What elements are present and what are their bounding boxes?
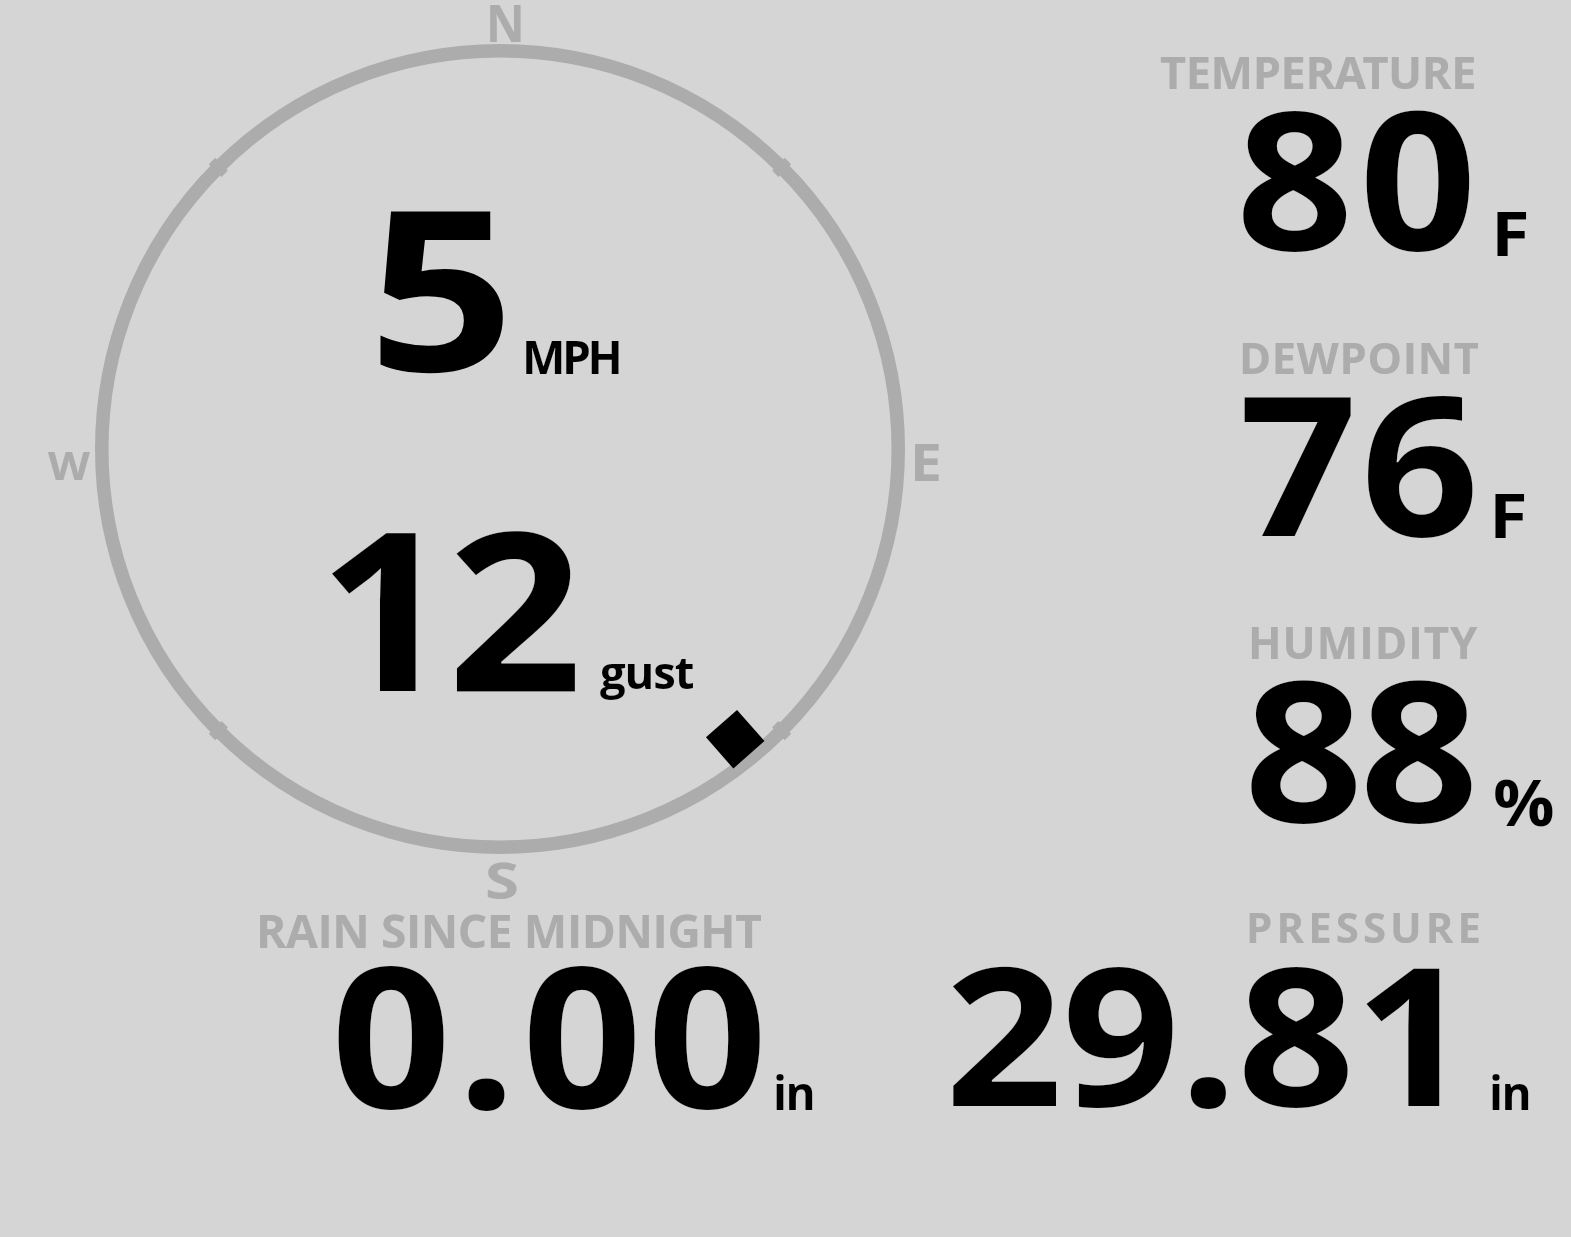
button[interactable]: Rain since midnight 0.00 inches xyxy=(230,895,850,1125)
staticText: 80 xyxy=(1236,45,1483,306)
staticText: gust xyxy=(600,640,694,702)
button[interactable]: Temperature 80 degrees Fahrenheit xyxy=(1100,40,1571,310)
staticText: F xyxy=(1489,474,1528,556)
staticText: S xyxy=(485,845,519,914)
button[interactable]: Humidity 88 percent xyxy=(1100,610,1571,880)
staticText: in xyxy=(1489,1061,1531,1124)
staticText: TEMPERATURE xyxy=(1160,41,1477,102)
staticText: E xyxy=(910,426,943,497)
staticText: DEWPOINT xyxy=(1239,328,1480,387)
button[interactable]: Wind speed and direction xyxy=(60,10,950,900)
staticText: 0.00 xyxy=(331,898,773,1165)
button[interactable]: Pressure 29.81 inches xyxy=(900,895,1560,1125)
staticText: MPH xyxy=(522,325,620,388)
button[interactable]: Dew point 76 degrees Fahrenheit xyxy=(1100,325,1571,595)
staticText: 5 xyxy=(368,132,515,437)
staticText: PRESSURE xyxy=(1246,898,1486,955)
staticText: in xyxy=(773,1061,815,1124)
staticText: W xyxy=(48,438,91,492)
staticText: 76 xyxy=(1239,329,1483,593)
staticText: 29.81 xyxy=(945,900,1471,1162)
staticText: RAIN SINCE MIDNIGHT xyxy=(256,899,762,962)
staticText: HUMIDITY xyxy=(1248,612,1479,672)
staticText: 12 xyxy=(318,455,577,756)
staticText: N xyxy=(486,0,526,58)
staticText: F xyxy=(1491,192,1530,274)
staticText: % xyxy=(1493,758,1555,845)
staticText: 88 xyxy=(1244,614,1475,879)
